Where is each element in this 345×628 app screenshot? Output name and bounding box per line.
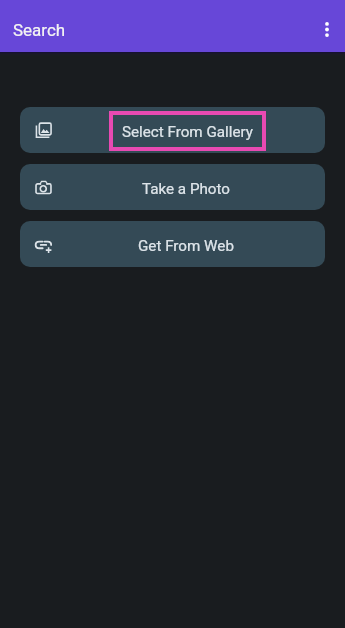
button[interactable]: Get From Web — [20, 221, 325, 267]
button[interactable]: Take a Photo — [20, 164, 325, 210]
staticText: Search — [13, 20, 66, 40]
button[interactable]: More options — [309, 8, 345, 44]
staticText: Take a Photo — [142, 180, 230, 198]
staticText: Get From Web — [138, 237, 234, 255]
staticText: Select From Gallery — [122, 123, 253, 141]
button[interactable]: Select From Gallery — [20, 107, 325, 153]
